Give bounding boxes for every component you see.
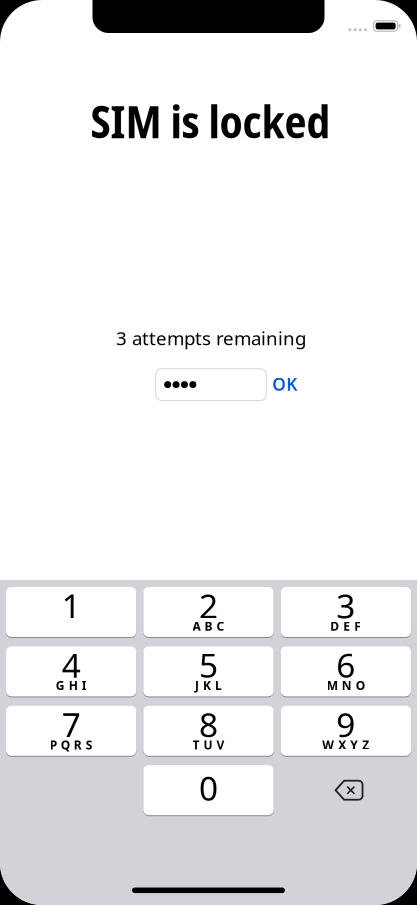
staticText: P Q R S (50, 737, 93, 753)
button[interactable]: 1 (6, 587, 136, 637)
button[interactable]: 5 (143, 646, 274, 696)
staticText: 3 attempts remaining (116, 326, 306, 350)
staticText: 6 (336, 643, 355, 687)
staticText: J K L (195, 677, 222, 693)
staticText: 7 (62, 702, 81, 746)
staticText: OK (272, 372, 297, 395)
staticText: 4 (62, 643, 81, 687)
staticText: 0 (199, 766, 218, 810)
button[interactable]: 2 (143, 587, 274, 637)
button[interactable]: 3 (281, 587, 411, 637)
button[interactable]: 0 (143, 765, 274, 815)
staticText: D E F (330, 618, 361, 634)
staticText: 2 (199, 583, 218, 628)
button[interactable]: 6 (281, 646, 411, 696)
staticText: 9 (336, 702, 355, 746)
button[interactable]: 8 (143, 706, 274, 756)
staticText: G H I (56, 677, 87, 693)
button[interactable]: 7 (6, 706, 136, 756)
staticText: A B C (192, 618, 224, 634)
button[interactable]: Delete (281, 765, 411, 815)
button[interactable]: SIM PIN (156, 369, 266, 400)
button[interactable]: 9 (281, 706, 411, 756)
staticText: T U V (192, 737, 224, 753)
staticText: 5 (199, 643, 218, 687)
staticText: 3 (336, 583, 355, 628)
staticText: SIM is locked (90, 91, 330, 151)
staticText: M N O (327, 677, 365, 693)
button[interactable]: OK (272, 372, 297, 395)
button[interactable]: 4 (6, 646, 136, 696)
staticText: 8 (199, 702, 218, 746)
staticText: 1 (62, 583, 81, 628)
staticText: W X Y Z (322, 737, 369, 753)
